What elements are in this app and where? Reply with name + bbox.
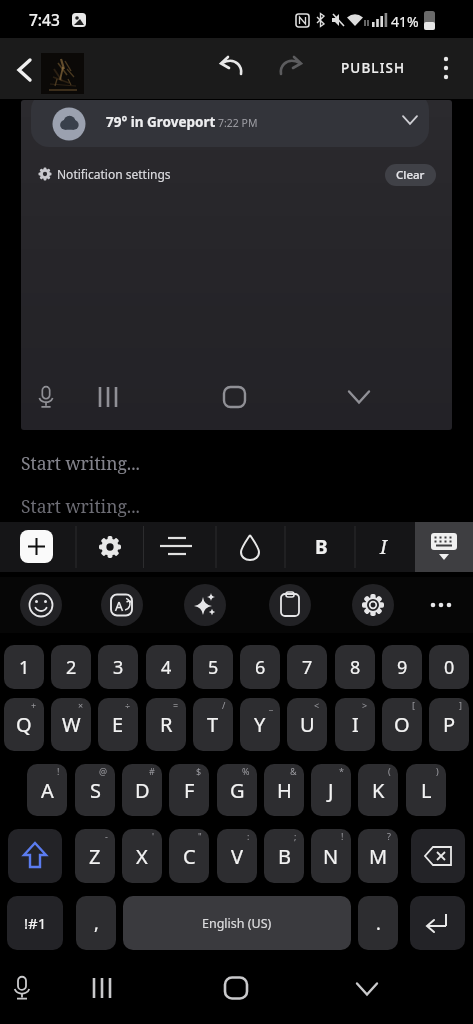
button[interactable]: . (358, 896, 398, 950)
button[interactable]: N (311, 829, 351, 883)
staticText: 5 (208, 655, 219, 680)
button[interactable]: 7 (287, 645, 327, 689)
staticText: W (62, 711, 81, 738)
button[interactable] (20, 530, 53, 563)
staticText: D (135, 777, 150, 804)
button[interactable]: M (358, 829, 398, 883)
button[interactable] (420, 584, 462, 626)
button[interactable]: K (358, 764, 398, 816)
button[interactable]: U (287, 698, 327, 751)
button[interactable]: Clear (385, 164, 436, 186)
button[interactable] (352, 584, 394, 626)
staticText: English (US) (202, 915, 272, 932)
button[interactable]: E (98, 698, 138, 751)
button[interactable]: Y (240, 698, 280, 751)
staticText: A (41, 777, 54, 804)
staticText: U (300, 711, 315, 738)
staticText: 79° in Groveport (106, 113, 216, 131)
button[interactable]: A (27, 764, 67, 816)
staticText: ? (387, 830, 391, 842)
button[interactable]: R (146, 698, 186, 751)
button[interactable] (269, 584, 311, 626)
button[interactable]: C (169, 829, 209, 883)
button[interactable] (101, 584, 143, 626)
button[interactable]: Z (75, 829, 115, 883)
staticText: ! (341, 830, 344, 842)
staticText: F (184, 777, 195, 804)
button[interactable]: 9 (382, 645, 422, 689)
button[interactable] (411, 829, 465, 883)
staticText: @ (99, 765, 108, 777)
button[interactable]: L (406, 764, 446, 816)
button[interactable]: B (296, 522, 346, 572)
staticText: 8 (350, 655, 361, 680)
staticText: 3 (113, 655, 124, 680)
staticText: 9 (397, 655, 408, 680)
button[interactable] (8, 829, 62, 883)
button[interactable] (80, 522, 140, 572)
staticText: V (231, 843, 243, 870)
button[interactable]: P (429, 698, 469, 751)
staticText: ( (388, 765, 391, 777)
staticText: Y (254, 711, 266, 738)
staticText: Start writing... (21, 494, 140, 518)
staticText: ! (57, 765, 60, 777)
button[interactable]: 1 (4, 645, 44, 689)
button[interactable]: S (75, 764, 115, 816)
staticText: " (198, 830, 202, 842)
button[interactable] (347, 970, 387, 1010)
button[interactable]: 2 (51, 645, 91, 689)
button[interactable]: 6 (240, 645, 280, 689)
button[interactable] (268, 50, 312, 86)
button[interactable]: V (217, 829, 257, 883)
button[interactable]: 5 (193, 645, 233, 689)
staticText: ) (436, 765, 439, 777)
staticText: Clear (396, 167, 425, 183)
button[interactable]: F (169, 764, 209, 816)
button[interactable]: D (122, 764, 162, 816)
button[interactable]: 4 (146, 645, 186, 689)
button[interactable]: I (335, 698, 375, 751)
button[interactable]: G (217, 764, 257, 816)
button[interactable]: 0 (429, 645, 469, 689)
staticText: 41% (391, 12, 419, 31)
staticText: < (314, 699, 320, 711)
button[interactable] (220, 522, 280, 572)
staticText: K (372, 777, 385, 804)
button[interactable] (184, 584, 226, 626)
button[interactable]: J (311, 764, 351, 816)
button[interactable] (20, 584, 62, 626)
staticText: Start writing... (21, 451, 140, 475)
staticText: > (362, 699, 368, 711)
button[interactable]: O (382, 698, 422, 751)
button[interactable]: , (76, 896, 116, 950)
button[interactable] (41, 53, 84, 94)
button[interactable]: B (264, 829, 304, 883)
button[interactable] (82, 970, 122, 1010)
staticText: M (369, 843, 388, 870)
button[interactable]: English (US) (123, 896, 351, 950)
button[interactable] (428, 50, 464, 86)
button[interactable]: Q (4, 698, 44, 751)
button[interactable] (150, 522, 210, 572)
staticText: / (222, 699, 226, 711)
button[interactable]: !#1 (7, 896, 63, 950)
button[interactable]: PUBLISH (332, 48, 414, 88)
button[interactable] (4, 970, 44, 1010)
button[interactable] (216, 970, 256, 1010)
staticText: ' (152, 830, 155, 842)
button[interactable]: W (51, 698, 91, 751)
staticText: C (183, 843, 196, 870)
button[interactable]: I (360, 522, 406, 572)
button[interactable]: 3 (98, 645, 138, 689)
staticText: L (421, 777, 432, 804)
button[interactable] (410, 896, 465, 950)
button[interactable]: 8 (335, 645, 375, 689)
button[interactable]: 79° in Groveport (21, 100, 452, 430)
button[interactable]: X (122, 829, 162, 883)
button[interactable]: H (264, 764, 304, 816)
button[interactable] (6, 52, 42, 88)
button[interactable] (415, 522, 473, 572)
button[interactable]: T (193, 698, 233, 751)
button[interactable] (210, 50, 254, 86)
